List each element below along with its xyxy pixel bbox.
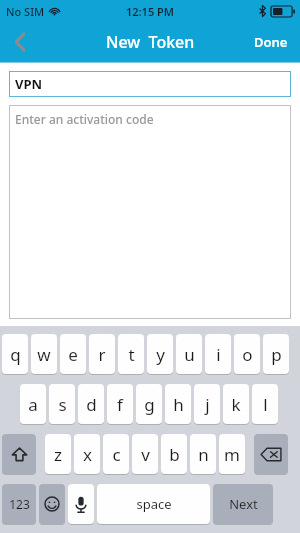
- button[interactable]: z: [45, 434, 71, 474]
- staticText: No SIM: [6, 4, 45, 19]
- staticText: space: [136, 495, 172, 513]
- button[interactable]: [68, 484, 94, 524]
- staticText: g: [144, 393, 155, 416]
- staticText: x: [83, 443, 92, 466]
- staticText: p: [271, 343, 282, 366]
- other: Voice input: [68, 484, 94, 524]
- button[interactable]: j: [194, 384, 220, 424]
- staticText: j: [205, 393, 210, 416]
- other: Shift: [2, 434, 36, 474]
- staticText: o: [242, 343, 253, 366]
- button[interactable]: q: [2, 334, 28, 374]
- button[interactable]: a: [20, 384, 46, 424]
- staticText: VPN: [15, 75, 43, 93]
- staticText: z: [54, 443, 62, 466]
- button[interactable]: VPN: [9, 71, 291, 97]
- staticText: Next: [229, 495, 258, 513]
- staticText: q: [10, 343, 21, 366]
- button[interactable]: w: [31, 334, 57, 374]
- button[interactable]: v: [132, 434, 158, 474]
- button[interactable]: t: [118, 334, 144, 374]
- button[interactable]: u: [176, 334, 202, 374]
- button[interactable]: s: [49, 384, 75, 424]
- button[interactable]: [39, 484, 65, 524]
- staticText: Enter an activation code: [15, 111, 154, 127]
- button[interactable]: Enter an activation code: [9, 105, 291, 319]
- staticText: s: [58, 393, 67, 416]
- staticText: y: [156, 343, 165, 366]
- staticText: w: [37, 343, 51, 366]
- button[interactable]: f: [107, 384, 133, 424]
- staticText: f: [117, 393, 123, 416]
- button[interactable]: d: [78, 384, 104, 424]
- staticText: k: [231, 393, 241, 416]
- staticText: n: [198, 443, 209, 466]
- staticText: h: [173, 393, 184, 416]
- staticText: t: [128, 343, 135, 366]
- button[interactable]: o: [234, 334, 260, 374]
- button[interactable]: k: [223, 384, 249, 424]
- button[interactable]: n: [190, 434, 216, 474]
- button[interactable]: Back: [0, 22, 40, 62]
- staticText: 123: [9, 496, 30, 512]
- button[interactable]: Next: [213, 484, 273, 524]
- button[interactable]: [2, 434, 36, 474]
- button[interactable]: p: [263, 334, 289, 374]
- button[interactable]: b: [161, 434, 187, 474]
- button[interactable]: c: [103, 434, 129, 474]
- button[interactable]: y: [147, 334, 173, 374]
- button[interactable]: i: [205, 334, 231, 374]
- staticText: Done: [254, 33, 288, 51]
- staticText: e: [68, 343, 78, 366]
- staticText: c: [112, 443, 121, 466]
- button[interactable]: l: [252, 384, 278, 424]
- staticText: u: [184, 343, 195, 366]
- staticText: d: [86, 393, 97, 416]
- other: Delete: [254, 434, 288, 474]
- button[interactable]: [254, 434, 288, 474]
- staticText: a: [28, 393, 38, 416]
- button[interactable]: x: [74, 434, 100, 474]
- button[interactable]: g: [136, 384, 162, 424]
- button[interactable]: space: [97, 484, 210, 524]
- button[interactable]: e: [60, 334, 86, 374]
- button[interactable]: Done: [250, 27, 292, 57]
- button[interactable]: 123: [2, 484, 36, 524]
- button[interactable]: h: [165, 384, 191, 424]
- other: Emoji: [39, 484, 65, 524]
- staticText: 12:15 PM: [126, 4, 175, 19]
- staticText: i: [216, 343, 221, 366]
- staticText: v: [141, 443, 150, 466]
- staticText: r: [98, 343, 106, 366]
- staticText: b: [169, 443, 180, 466]
- staticText: m: [224, 443, 240, 466]
- staticText: l: [263, 393, 268, 416]
- button[interactable]: m: [219, 434, 245, 474]
- staticText: New Token: [106, 31, 195, 53]
- button[interactable]: r: [89, 334, 115, 374]
